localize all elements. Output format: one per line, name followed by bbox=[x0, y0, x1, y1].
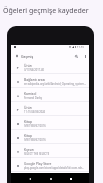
staticText: 11:15 04/06/2024 bbox=[24, 110, 46, 114]
staticText: en.wikipedia.org/wiki/Android_Operating_… bbox=[24, 82, 87, 86]
button[interactable]: Open navigation menu bbox=[13, 52, 20, 59]
staticText: Google Play Store bbox=[24, 161, 52, 165]
button[interactable]: Recent apps bbox=[68, 176, 74, 182]
staticText: Kitap bbox=[24, 119, 32, 123]
button[interactable]: Search bbox=[72, 52, 80, 60]
staticText: 9/8/1938/67/2016 bbox=[24, 138, 46, 142]
staticText: Kamisol bbox=[24, 91, 37, 95]
staticText: Bağlantı arası bbox=[24, 77, 46, 81]
button[interactable]: Home bbox=[48, 176, 54, 182]
staticText: Öğeleri geçmişe kaydeder bbox=[3, 6, 89, 16]
staticText: Geçmiş bbox=[21, 54, 34, 59]
staticText: Ürün bbox=[24, 105, 32, 109]
button[interactable]: Kamisol bbox=[11, 88, 89, 102]
staticText: 11:15 bbox=[77, 46, 85, 48]
staticText: Kıyısın bbox=[24, 147, 34, 151]
staticText: Ürün bbox=[24, 63, 32, 67]
button[interactable]: More options bbox=[81, 52, 89, 60]
staticText: Kitap bbox=[24, 133, 32, 137]
staticText: 3/17/64/2017-40 bbox=[24, 68, 45, 72]
staticText: SELECT THE SELECTE bbox=[24, 152, 50, 156]
staticText: play.google.com/store/apps/details?id=co… bbox=[24, 166, 84, 170]
button[interactable]: Kitap bbox=[11, 130, 89, 144]
staticText: 9/8/1938/67/2016 bbox=[24, 124, 46, 128]
button[interactable]: Bağlantı arası bbox=[11, 74, 89, 88]
button[interactable]: Kıyısın bbox=[11, 144, 89, 158]
staticText: Fernand Darby bbox=[24, 96, 43, 100]
button[interactable]: Ürün bbox=[11, 60, 89, 74]
button[interactable]: Google Play Store bbox=[11, 158, 89, 172]
button[interactable]: Ürün bbox=[11, 102, 89, 116]
button[interactable]: Back bbox=[27, 176, 33, 182]
button[interactable]: Kitap bbox=[11, 116, 89, 130]
